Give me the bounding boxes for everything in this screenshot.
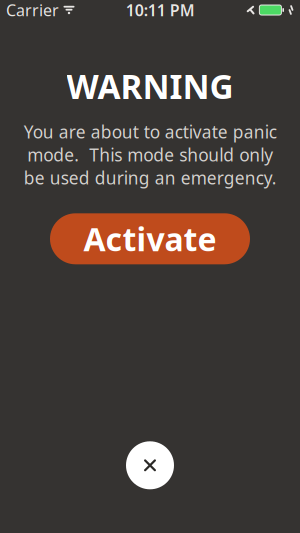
staticText: Carrier xyxy=(6,0,59,21)
staticText: Activate xyxy=(83,218,216,260)
staticText: You are about to activate panic mode. Th… xyxy=(23,120,276,189)
button[interactable]: Activate xyxy=(50,213,250,264)
button[interactable]: Close xyxy=(126,441,174,489)
staticText: 10:11 PM xyxy=(126,0,195,21)
staticText: WARNING xyxy=(66,64,233,108)
